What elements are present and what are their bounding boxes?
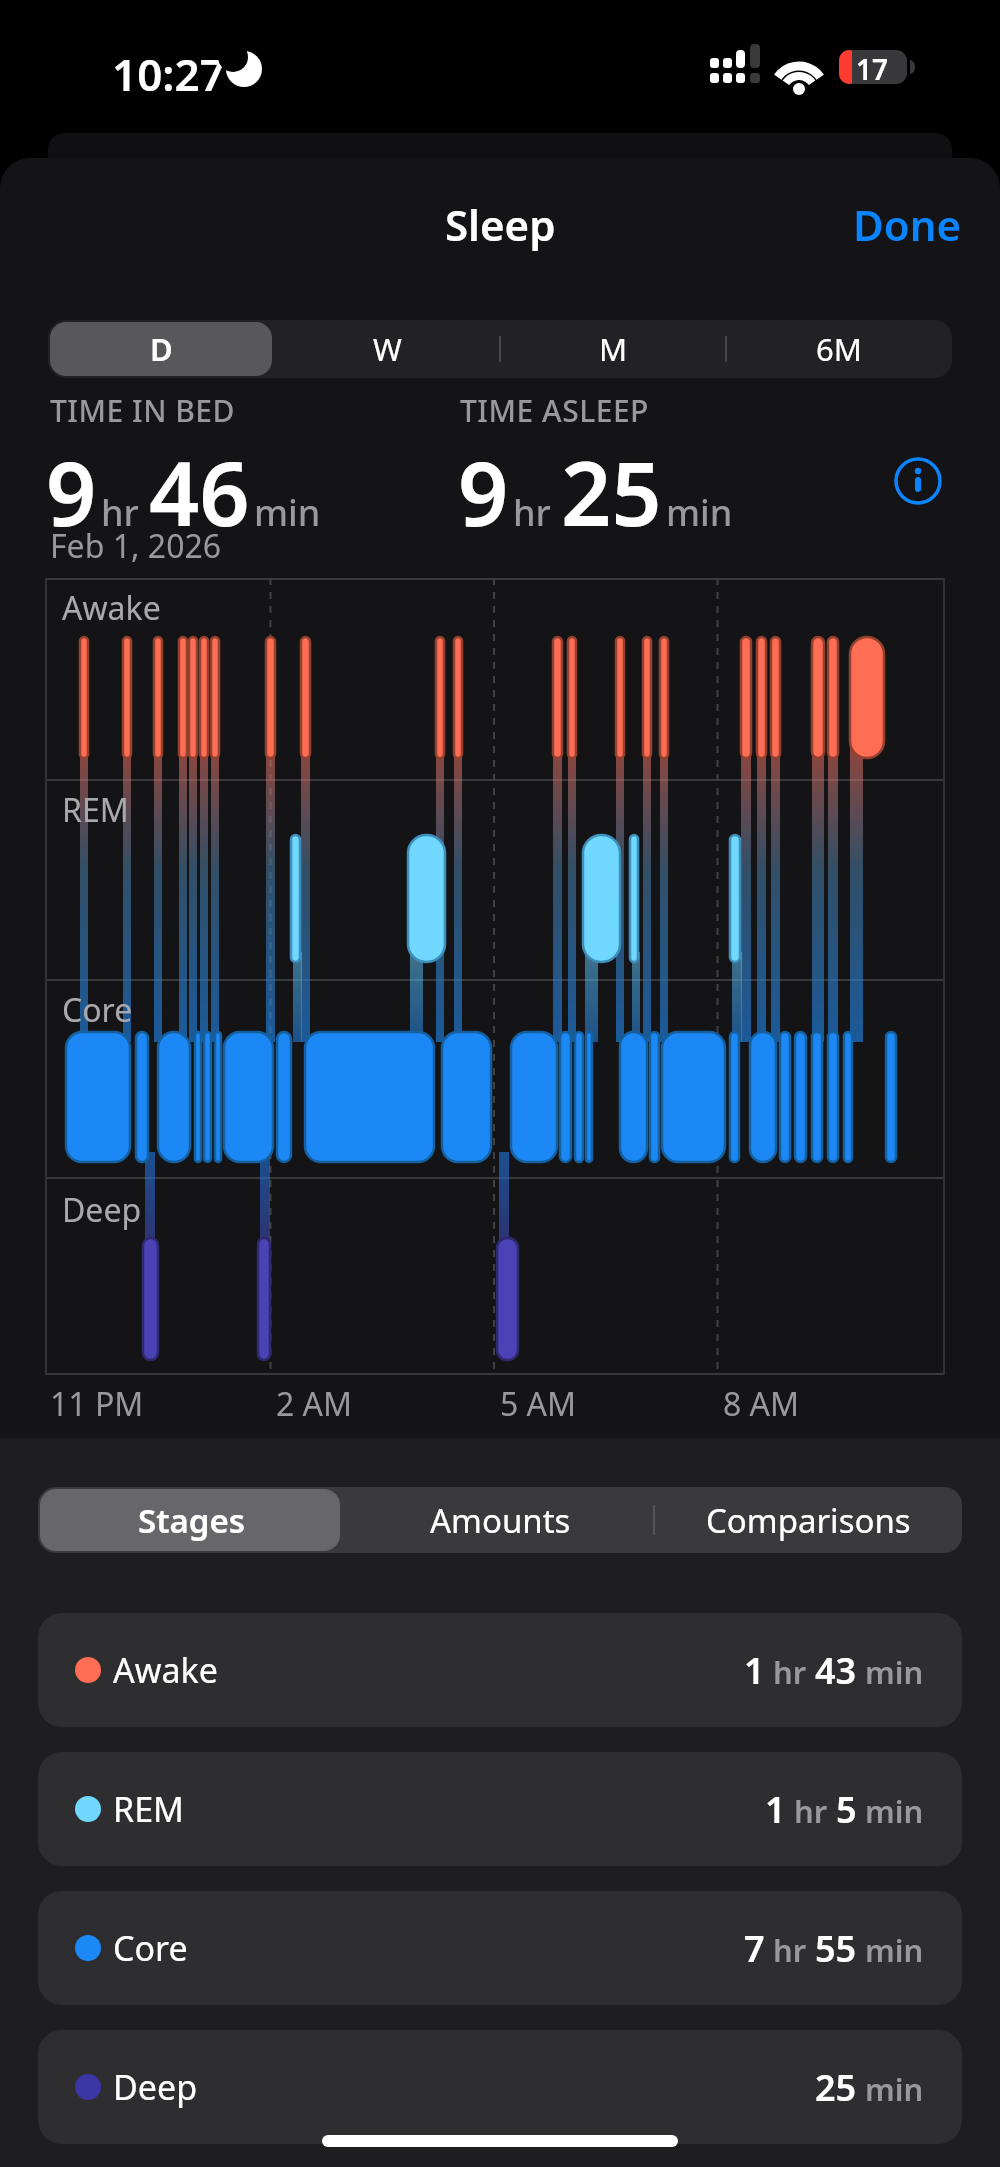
staticText: W bbox=[373, 328, 402, 370]
staticText: 2 AM bbox=[276, 1382, 353, 1426]
staticText: 43 bbox=[815, 1646, 857, 1695]
staticText: 1 bbox=[765, 1785, 786, 1834]
staticText: 9 bbox=[46, 432, 97, 552]
staticText: 11 PM bbox=[50, 1382, 144, 1426]
staticText: Stages bbox=[138, 1498, 246, 1543]
staticText: 5 AM bbox=[500, 1382, 577, 1426]
staticText: REM bbox=[62, 788, 129, 832]
staticText: Feb 1, 2026 bbox=[50, 524, 222, 568]
staticText: 9 bbox=[458, 432, 509, 552]
staticText: D bbox=[150, 328, 173, 370]
staticText: M bbox=[599, 328, 628, 370]
staticText: 10:27 bbox=[112, 44, 225, 104]
staticText: min bbox=[857, 1929, 924, 1971]
staticText: 7 bbox=[744, 1924, 765, 1973]
staticText: Awake bbox=[62, 586, 161, 630]
button[interactable]: REM bbox=[38, 1752, 962, 1866]
staticText: hr bbox=[786, 1790, 836, 1832]
staticText: Awake bbox=[113, 1647, 218, 1693]
staticText: 17 bbox=[856, 50, 889, 88]
staticText: Core bbox=[62, 988, 133, 1032]
button[interactable]: Done bbox=[853, 196, 962, 253]
button[interactable]: Awake bbox=[38, 1613, 962, 1727]
staticText: 6M bbox=[816, 328, 862, 370]
staticText: TIME IN BED bbox=[50, 390, 235, 431]
staticText: min bbox=[254, 488, 321, 537]
staticText: hr bbox=[765, 1929, 815, 1971]
staticText: 25 bbox=[815, 2063, 857, 2112]
button[interactable]: M bbox=[500, 320, 726, 378]
staticText: 5 bbox=[836, 1785, 857, 1834]
staticText: 46 bbox=[149, 432, 250, 552]
staticText: hr bbox=[101, 488, 139, 537]
staticText: Done bbox=[853, 196, 962, 253]
staticText: 55 bbox=[815, 1924, 857, 1973]
staticText: 25 bbox=[561, 432, 662, 552]
staticText: 8 AM bbox=[723, 1382, 800, 1426]
button[interactable]: Deep bbox=[38, 2030, 962, 2144]
button[interactable]: D bbox=[48, 320, 274, 378]
staticText: min bbox=[857, 1790, 924, 1832]
button[interactable]: Core bbox=[38, 1891, 962, 2005]
staticText: Deep bbox=[62, 1188, 142, 1232]
staticText: Deep bbox=[113, 2064, 198, 2110]
staticText: min bbox=[857, 1651, 924, 1693]
staticText: 1 bbox=[744, 1646, 765, 1695]
button[interactable]: W bbox=[274, 320, 500, 378]
button[interactable]: 6M bbox=[726, 320, 952, 378]
button[interactable]: Amounts bbox=[346, 1487, 654, 1553]
staticText: hr bbox=[765, 1651, 815, 1693]
staticText: Core bbox=[113, 1925, 188, 1971]
staticText: Sleep bbox=[445, 196, 556, 253]
button[interactable] bbox=[894, 457, 942, 505]
staticText: Amounts bbox=[430, 1498, 571, 1543]
staticText: Comparisons bbox=[706, 1498, 911, 1543]
button[interactable]: Comparisons bbox=[654, 1487, 962, 1553]
staticText: TIME ASLEEP bbox=[460, 390, 649, 431]
staticText: hr bbox=[513, 488, 551, 537]
button[interactable]: Stages bbox=[38, 1487, 346, 1553]
staticText: REM bbox=[113, 1786, 184, 1832]
staticText: min bbox=[857, 2068, 924, 2110]
staticText: min bbox=[666, 488, 733, 537]
